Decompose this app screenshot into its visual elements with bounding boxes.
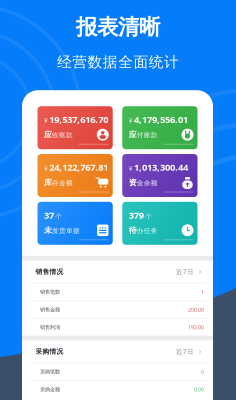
staticText: ¥ bbox=[44, 164, 48, 173]
staticText: 0 bbox=[201, 368, 204, 375]
staticText: 个 bbox=[145, 212, 152, 221]
staticText: 未 bbox=[44, 225, 52, 235]
staticText: 资 bbox=[129, 178, 137, 187]
staticText: 销售笔数 bbox=[40, 289, 60, 295]
staticText: 37 bbox=[44, 209, 54, 221]
staticText: 200.00 bbox=[188, 306, 204, 313]
button[interactable]: 采购情况 bbox=[22, 341, 213, 363]
staticText: 1,013,300.44 bbox=[134, 161, 188, 173]
staticText: 应 bbox=[44, 130, 52, 140]
button[interactable]: ¥ bbox=[37, 106, 113, 149]
button[interactable]: 销售情况 bbox=[22, 261, 213, 283]
staticText: 办任务 bbox=[137, 227, 158, 235]
staticText: 应 bbox=[129, 130, 137, 140]
staticText: 0.00 bbox=[194, 386, 204, 393]
staticText: 销售情况 bbox=[35, 268, 63, 276]
staticText: 销售利润 bbox=[40, 324, 60, 330]
staticText: 24,122,767.81 bbox=[49, 161, 108, 173]
staticText: 发货单据 bbox=[52, 227, 80, 235]
staticText: 4,179,556.01 bbox=[134, 113, 188, 126]
staticText: 采购情况 bbox=[35, 347, 63, 356]
staticText: 近7日 bbox=[176, 267, 194, 276]
staticText: 采购金额 bbox=[40, 386, 60, 393]
staticText: ¥ bbox=[129, 116, 133, 125]
staticText: 待 bbox=[129, 225, 137, 235]
staticText: 个 bbox=[55, 212, 62, 221]
staticText: 收账款 bbox=[52, 131, 73, 139]
staticText: 19,537,616.70 bbox=[49, 113, 108, 126]
staticText: 近7日 bbox=[176, 347, 194, 356]
staticText: 报表清晰 bbox=[76, 14, 160, 40]
staticText: 379 bbox=[129, 209, 144, 221]
staticText: ¥ bbox=[44, 116, 48, 125]
staticText: ¥ bbox=[129, 164, 133, 173]
staticText: 采购笔数 bbox=[40, 368, 60, 375]
staticText: 金余额 bbox=[137, 179, 158, 187]
button[interactable]: 37 bbox=[37, 202, 113, 245]
staticText: 库 bbox=[44, 178, 52, 187]
staticText: 销售金额 bbox=[40, 306, 60, 313]
staticText: 192.00 bbox=[188, 324, 204, 331]
button[interactable]: ¥ bbox=[37, 154, 113, 197]
button[interactable]: 379 bbox=[122, 202, 197, 245]
staticText: 经营数据全面统计 bbox=[57, 53, 179, 71]
button[interactable]: ¥ bbox=[122, 106, 197, 149]
staticText: 存金额 bbox=[52, 179, 73, 187]
staticText: 付账款 bbox=[137, 131, 158, 139]
staticText: 1 bbox=[201, 288, 204, 296]
button[interactable]: ¥ bbox=[122, 154, 197, 197]
